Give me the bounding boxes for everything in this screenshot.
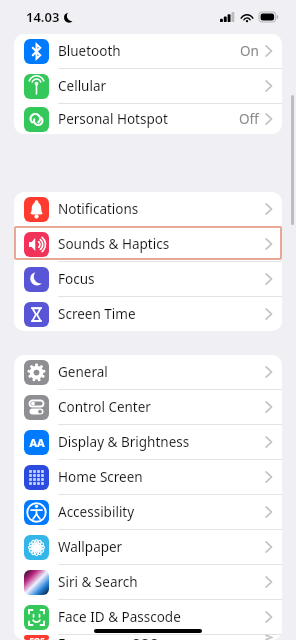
staticText: Face ID & Passcode: [58, 608, 181, 626]
button[interactable]: Cellular: [14, 69, 282, 104]
staticText: Accessibility: [58, 503, 135, 521]
button[interactable]: Home Screen: [14, 460, 282, 495]
staticText: Screen Time: [58, 305, 136, 323]
button[interactable]: Siri & Search: [14, 565, 282, 600]
staticText: Settings: [117, 37, 179, 57]
staticText: Display & Brightness: [58, 433, 190, 451]
staticText: General: [58, 363, 108, 381]
button[interactable]: SOS: [14, 635, 282, 640]
button[interactable]: Screen Time: [14, 297, 282, 331]
button[interactable]: Notifications: [14, 192, 282, 227]
staticText: Sounds & Haptics: [58, 235, 170, 253]
staticText: Personal Hotspot: [58, 110, 168, 128]
button[interactable]: Accessibility: [14, 495, 282, 530]
staticText: Bluetooth: [58, 42, 121, 60]
staticText: Focus: [58, 270, 95, 288]
button[interactable]: Wallpaper: [14, 530, 282, 565]
staticText: Emergency SOS: [58, 635, 158, 640]
staticText: Notifications: [58, 200, 139, 218]
staticText: SOS: [29, 635, 45, 640]
staticText: AA: [29, 435, 45, 450]
button[interactable]: AA: [14, 425, 282, 460]
button[interactable]: Control Center: [14, 390, 282, 425]
staticText: Wallpaper: [58, 538, 123, 556]
staticText: Control Center: [58, 398, 151, 416]
staticText: Off: [239, 110, 259, 128]
button[interactable]: General: [14, 355, 282, 390]
button[interactable]: Face ID & Passcode: [14, 600, 282, 635]
staticText: Home Screen: [58, 468, 143, 486]
button[interactable]: Personal Hotspot: [14, 104, 282, 134]
staticText: Siri & Search: [58, 573, 138, 591]
staticText: Cellular: [58, 77, 107, 95]
staticText: On: [240, 42, 259, 60]
button[interactable]: Focus: [14, 262, 282, 297]
button[interactable]: Bluetooth: [14, 34, 282, 69]
button[interactable]: Sounds & Haptics: [14, 227, 282, 262]
staticText: 14.03: [26, 8, 60, 26]
